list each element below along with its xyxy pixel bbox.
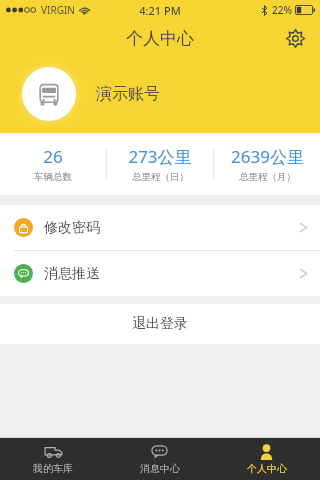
staticText: 4:21 PM — [139, 3, 181, 18]
staticText: 22% — [272, 3, 292, 17]
staticText: 2639公里 — [231, 145, 304, 168]
button[interactable]: 273公里 — [107, 133, 213, 195]
staticText: 车辆总数 — [34, 171, 72, 183]
staticText: 总里程（日） — [132, 171, 189, 183]
staticText: 273公里 — [128, 145, 192, 168]
button[interactable]: 26 — [0, 133, 106, 195]
button[interactable]: 个人中心 — [213, 438, 320, 480]
button[interactable]: 我的车库 — [0, 438, 106, 480]
staticText: 个人中心 — [126, 28, 194, 49]
staticText: 我的车库 — [33, 462, 73, 475]
button[interactable]: 修改密码 — [0, 205, 320, 250]
staticText: 总里程（月） — [239, 171, 296, 183]
staticText: 消息推送 — [44, 265, 100, 283]
button[interactable]: 消息中心 — [106, 438, 213, 480]
staticText: 个人中心 — [247, 462, 287, 475]
staticText: 26 — [43, 145, 63, 168]
staticText: VIRGIN — [41, 3, 75, 17]
staticText: 消息中心 — [140, 462, 180, 475]
staticText: 退出登录 — [132, 315, 188, 333]
button[interactable]: 退出登录 — [0, 304, 320, 344]
staticText: 演示账号 — [96, 84, 160, 104]
button[interactable]: 2639公里 — [214, 133, 320, 195]
staticText: 修改密码 — [44, 219, 100, 237]
button[interactable]: Avatar — [22, 67, 76, 121]
button[interactable]: Settings — [278, 21, 312, 55]
button[interactable]: 消息推送 — [0, 251, 320, 296]
